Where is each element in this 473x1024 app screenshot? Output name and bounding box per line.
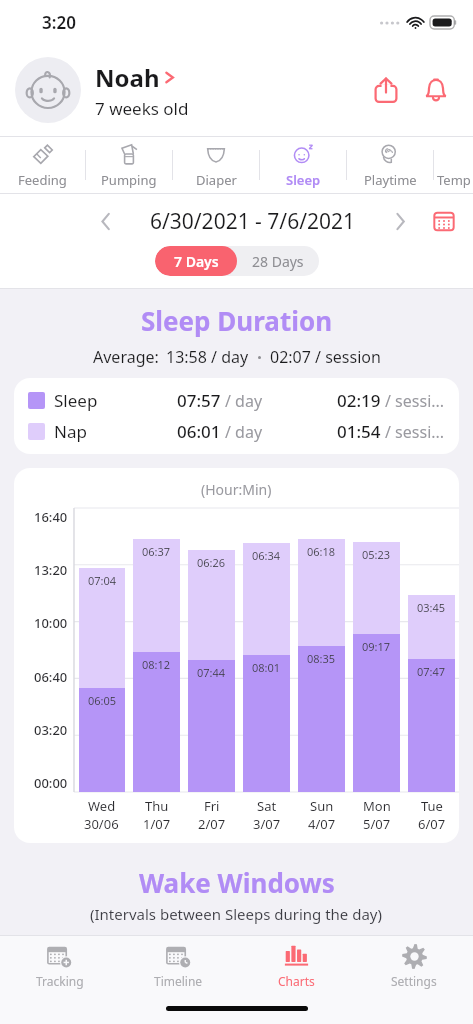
staticText: 28 Days xyxy=(252,252,304,271)
staticText: 7 weeks old xyxy=(95,97,189,120)
staticText: 1/07 xyxy=(143,815,171,833)
staticText: Tue xyxy=(421,797,443,815)
staticText: 09:17 xyxy=(362,639,391,654)
button[interactable]: Playtime xyxy=(347,137,433,193)
staticText: 16:40 xyxy=(34,508,68,526)
button[interactable]: Next week xyxy=(383,204,417,238)
staticText: (Intervals between Sleeps during the day… xyxy=(90,904,383,924)
staticText: (Hour:Min) xyxy=(201,480,272,499)
staticText: 3/07 xyxy=(253,815,281,833)
staticText: Timeline xyxy=(154,973,203,989)
button[interactable]: 03:45 xyxy=(408,508,455,792)
staticText: Average: xyxy=(93,346,159,368)
staticText: Noah xyxy=(95,61,160,94)
staticText: Diaper xyxy=(196,171,237,189)
staticText: Feeding xyxy=(18,171,67,189)
staticText: 06:26 xyxy=(197,555,226,570)
staticText: 07:47 xyxy=(417,664,446,679)
staticText: 6/07 xyxy=(418,815,446,833)
staticText: / day xyxy=(225,390,263,412)
staticText: 07:44 xyxy=(197,665,226,680)
staticText: 06:18 xyxy=(307,544,336,559)
staticText: Sleep xyxy=(286,171,321,189)
staticText: Playtime xyxy=(364,171,417,189)
staticText: Sleep Duration xyxy=(141,303,333,338)
button[interactable]: Timeline xyxy=(119,936,237,998)
staticText: Temp xyxy=(437,171,471,189)
button[interactable]: 05:23 xyxy=(353,508,400,792)
staticText: 06:01 xyxy=(177,420,221,443)
staticText: 10:00 xyxy=(34,614,68,632)
button[interactable]: Share xyxy=(364,68,408,112)
staticText: 5/07 xyxy=(363,815,391,833)
staticText: 4/07 xyxy=(308,815,336,833)
staticText: / day xyxy=(225,421,263,443)
staticText: 02:19 xyxy=(337,389,381,412)
staticText: 03:45 xyxy=(417,600,446,615)
button[interactable]: Feeding xyxy=(0,137,85,193)
staticText: Mon xyxy=(363,797,391,815)
button[interactable]: Tracking xyxy=(0,936,119,998)
button[interactable]: Baby profile photo xyxy=(15,57,81,123)
button[interactable]: Sleep xyxy=(28,389,445,443)
staticText: 06:05 xyxy=(88,693,117,708)
staticText: 08:01 xyxy=(252,660,281,675)
staticText: 06:37 xyxy=(142,544,171,559)
staticText: / sessi... xyxy=(385,390,445,412)
staticText: 6/30/2021 - 7/6/2021 xyxy=(122,207,383,236)
button[interactable]: Settings xyxy=(355,936,473,998)
staticText: Thu xyxy=(145,797,169,815)
staticText: Sun xyxy=(310,797,334,815)
button[interactable]: Notifications xyxy=(414,68,458,112)
staticText: 7 Days xyxy=(174,252,219,271)
staticText: Sleep xyxy=(54,389,126,412)
staticText: Wed xyxy=(88,797,116,815)
button[interactable]: Pumping xyxy=(86,137,172,193)
button[interactable]: 06:18 xyxy=(298,508,345,792)
button[interactable]: Previous week xyxy=(88,204,122,238)
staticText: 3:20 xyxy=(42,11,76,34)
staticText: 07:04 xyxy=(88,573,117,588)
staticText: 02:07 / session xyxy=(270,346,381,368)
button[interactable]: Pick date xyxy=(429,206,459,236)
staticText: 07:57 xyxy=(177,389,221,412)
staticText: 06:34 xyxy=(252,548,281,563)
button[interactable]: 28 Days xyxy=(237,246,319,276)
staticText: / sessi... xyxy=(385,421,445,443)
staticText: Tracking xyxy=(36,973,84,989)
staticText: 05:23 xyxy=(362,547,391,562)
staticText: 13:58 / day xyxy=(166,346,249,368)
staticText: 01:54 xyxy=(337,420,381,443)
button[interactable]: Diaper xyxy=(173,137,259,193)
staticText: 2/07 xyxy=(198,815,226,833)
staticText: Nap xyxy=(54,420,126,443)
staticText: 08:12 xyxy=(142,657,171,672)
staticText: 03:20 xyxy=(34,721,68,739)
button[interactable]: 06:34 xyxy=(243,508,290,792)
staticText: Wake Windows xyxy=(139,865,335,900)
button[interactable]: 06:26 xyxy=(188,508,235,792)
staticText: 08:35 xyxy=(307,651,336,666)
staticText: Sat xyxy=(257,797,277,815)
button[interactable]: Noah xyxy=(95,61,364,120)
staticText: 13:20 xyxy=(34,561,68,579)
button[interactable]: Sleep xyxy=(260,137,346,193)
button[interactable]: Charts xyxy=(237,936,355,998)
staticText: 06:40 xyxy=(34,668,68,686)
staticText: Settings xyxy=(391,973,437,989)
button[interactable]: 7 Days xyxy=(155,246,237,276)
staticText: Fri xyxy=(204,797,220,815)
staticText: Charts xyxy=(278,973,315,989)
staticText: 00:00 xyxy=(34,774,68,792)
button[interactable]: 06:37 xyxy=(133,508,180,792)
staticText: Pumping xyxy=(101,171,157,189)
staticText: 30/06 xyxy=(84,815,119,833)
button[interactable]: 07:04 xyxy=(79,508,125,792)
button[interactable]: Temp xyxy=(434,137,473,193)
